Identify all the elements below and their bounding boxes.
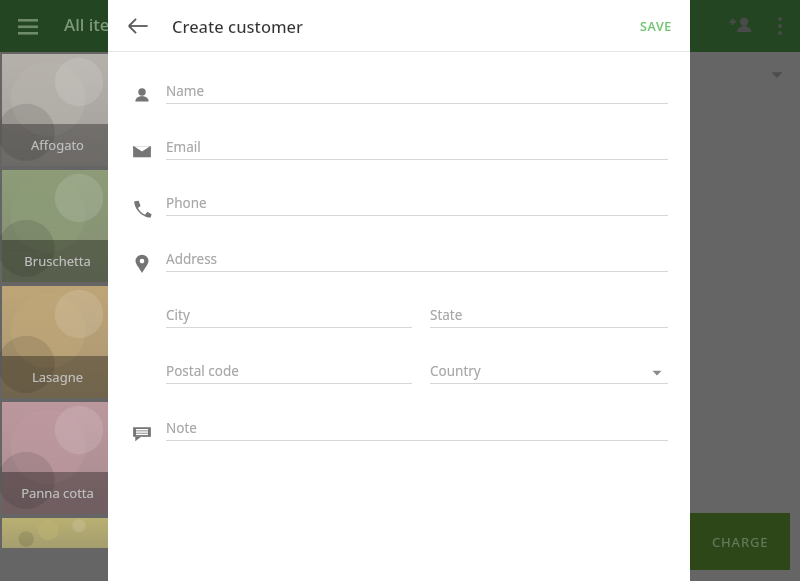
button[interactable]: Select (766, 64, 788, 86)
staticText: Name (166, 82, 205, 100)
button[interactable] (2, 518, 112, 548)
button[interactable]: Panna cotta (2, 402, 112, 514)
button[interactable]: More options (768, 14, 792, 38)
staticText: CHARGE (712, 533, 769, 551)
staticText: Email (166, 138, 201, 156)
staticText: SAVE (640, 18, 673, 35)
button[interactable]: Name (166, 80, 668, 114)
button[interactable]: Add customer (728, 14, 754, 40)
button[interactable]: Back (126, 14, 150, 38)
staticText: Phone (166, 194, 207, 212)
staticText: Affogato (31, 136, 84, 154)
staticText: City (166, 306, 190, 324)
staticText: State (430, 306, 463, 324)
button[interactable]: Lasagne (2, 286, 112, 398)
staticText: Bruschetta (24, 252, 91, 270)
button[interactable]: Country (430, 360, 668, 394)
button[interactable]: Address (166, 248, 668, 282)
button[interactable]: Affogato (2, 54, 112, 166)
button[interactable]: City (166, 304, 412, 338)
staticText: Lasagne (32, 368, 83, 386)
button[interactable]: Postal code (166, 360, 412, 394)
staticText: Postal code (166, 362, 239, 380)
button[interactable]: Phone (166, 192, 668, 226)
staticText: Create customer (172, 15, 304, 37)
button[interactable]: SAVE (630, 12, 682, 40)
staticText: Panna cotta (21, 484, 94, 502)
button[interactable]: CHARGE (690, 513, 790, 570)
staticText: Address (166, 250, 218, 268)
staticText: Note (166, 419, 197, 437)
staticText: Country (430, 362, 481, 380)
button[interactable]: Menu (16, 14, 40, 38)
button[interactable]: Bruschetta (2, 170, 112, 282)
staticText: All items (64, 13, 134, 36)
button[interactable]: Note (166, 417, 668, 451)
button[interactable]: Email (166, 136, 668, 170)
button[interactable]: State (430, 304, 668, 338)
